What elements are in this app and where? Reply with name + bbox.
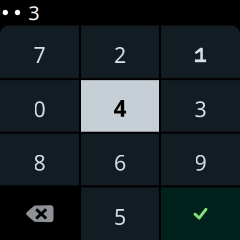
button[interactable]: 8 [0,134,79,185]
button[interactable]: 6 [81,134,159,185]
button[interactable] [161,187,240,240]
button[interactable] [0,187,79,240]
staticText: 7 [33,41,45,69]
button[interactable] [161,25,240,78]
button[interactable]: 9 [161,134,240,185]
button[interactable]: 7 [0,25,79,78]
staticText: 6 [114,148,126,177]
staticText: 9 [194,148,206,177]
staticText: 5 [114,202,126,231]
staticText: 4 [113,93,126,123]
staticText: 2 [114,41,126,69]
staticText: 8 [33,148,45,177]
button[interactable]: 2 [81,25,159,78]
staticText: 3 [194,95,206,123]
staticText: 0 [33,95,45,123]
staticText: 3 [28,0,39,26]
button[interactable]: 5 [81,187,159,240]
button[interactable]: 4 [81,80,159,132]
button[interactable]: 3 [161,80,240,132]
button[interactable]: 0 [0,80,79,132]
